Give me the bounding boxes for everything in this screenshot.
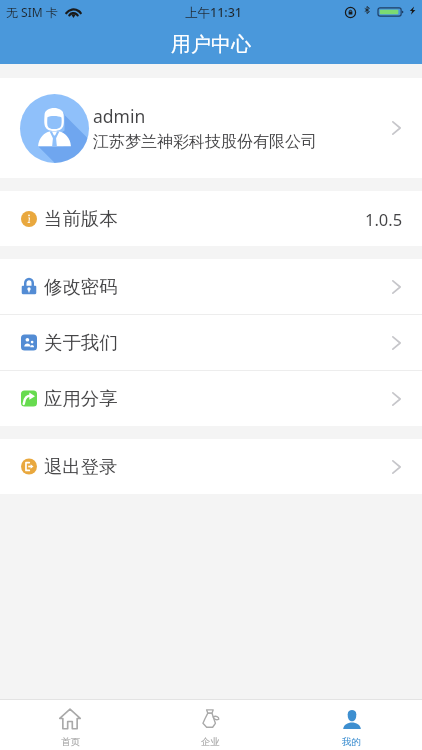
staticText: 无 SIM 卡	[6, 4, 58, 20]
button[interactable]: 首页	[0, 700, 140, 748]
button[interactable]: 我的	[281, 700, 422, 748]
staticText: 江苏梦兰神彩科技股份有限公司	[93, 132, 317, 152]
button[interactable]: 关于我们	[0, 315, 422, 370]
staticText: 1.0.5	[365, 208, 403, 230]
staticText: 我的	[342, 736, 361, 748]
staticText: 企业	[201, 736, 220, 748]
staticText: 退出登录	[44, 455, 118, 478]
staticText: 当前版本	[44, 207, 118, 230]
staticText: 关于我们	[44, 331, 118, 354]
button[interactable]: 退出登录	[0, 439, 422, 494]
staticText: 修改密码	[44, 275, 118, 298]
staticText: admin	[93, 104, 146, 128]
staticText: 应用分享	[44, 387, 118, 410]
staticText: 上午11:31	[185, 4, 243, 21]
button[interactable]: admin	[0, 78, 422, 178]
staticText: 用户中心	[171, 32, 251, 57]
button[interactable]: 企业	[140, 700, 281, 748]
button[interactable]: 应用分享	[0, 371, 422, 426]
button[interactable]: 当前版本	[0, 191, 422, 246]
staticText: 首页	[61, 736, 80, 748]
button[interactable]: 修改密码	[0, 259, 422, 314]
